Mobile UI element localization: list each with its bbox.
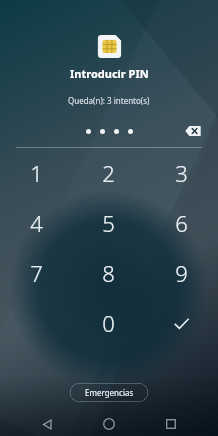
staticText: Queda(n): 3 intento(s) [68,95,150,106]
staticText: 2 [102,158,115,188]
button[interactable]: 2 [72,148,145,198]
button[interactable]: Aceptar [145,298,218,348]
staticText: 5 [102,208,115,238]
button[interactable]: 8 [72,248,145,298]
button[interactable]: Atrás [32,412,62,436]
button[interactable]: 7 [0,248,72,298]
button[interactable]: Inicio [94,412,124,436]
button[interactable]: 6 [145,198,218,248]
staticText: 6 [175,208,188,238]
staticText: 7 [30,258,43,288]
button[interactable]: 5 [72,198,145,248]
staticText: 1 [30,158,43,188]
button[interactable]: 0 [72,298,145,348]
button[interactable]: Emergencias [70,383,148,402]
staticText: Introducir PIN [70,66,149,81]
button[interactable]: Recientes [156,412,186,436]
staticText: 9 [175,258,188,288]
staticText: Emergencias [85,387,134,398]
staticText: 3 [175,158,188,188]
button[interactable]: Borrar [182,123,204,139]
staticText: 0 [102,308,115,338]
staticText: 8 [102,258,115,288]
button[interactable]: 4 [0,198,72,248]
staticText: 4 [30,208,43,238]
button[interactable]: 3 [145,148,218,198]
button[interactable]: 9 [145,248,218,298]
button[interactable]: 1 [0,148,72,198]
